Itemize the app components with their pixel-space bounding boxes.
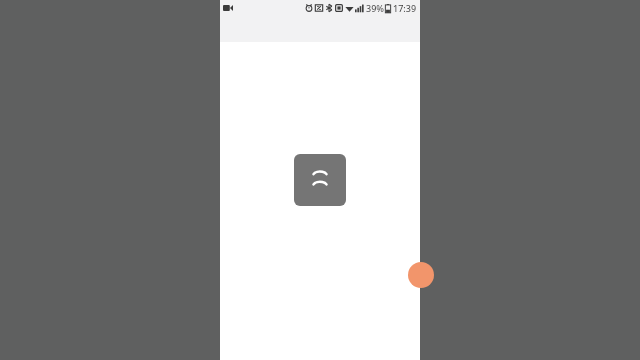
staticText: 39% <box>366 2 384 14</box>
button[interactable]: Image placeholder <box>294 154 346 206</box>
button[interactable]: Add <box>408 262 434 288</box>
staticText: 17:39 <box>393 2 417 14</box>
